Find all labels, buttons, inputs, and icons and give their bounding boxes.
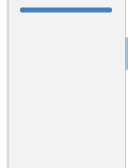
button[interactable] xyxy=(9,0,125,168)
button[interactable]: Scrollbar xyxy=(125,37,128,70)
button[interactable]: Progress xyxy=(19,6,113,14)
